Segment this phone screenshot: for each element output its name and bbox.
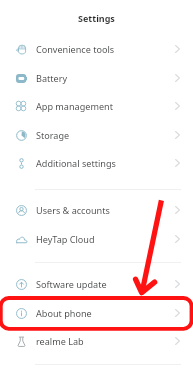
- staticText: Battery: [36, 72, 68, 84]
- staticText: Additional settings: [36, 157, 116, 169]
- button[interactable]: Additional settings: [0, 149, 193, 177]
- button[interactable]: HeyTap Cloud: [0, 225, 193, 253]
- button[interactable]: Battery: [0, 64, 193, 92]
- staticText: About phone: [36, 307, 92, 319]
- staticText: Settings: [78, 12, 115, 24]
- button[interactable]: App management: [0, 92, 193, 120]
- staticText: Software update: [36, 278, 107, 290]
- staticText: Storage: [36, 129, 70, 141]
- staticText: Users & accounts: [36, 204, 110, 216]
- button[interactable]: About phone: [0, 299, 193, 327]
- button[interactable]: Users & accounts: [0, 196, 193, 224]
- staticText: App management: [36, 100, 113, 112]
- button[interactable]: Software update: [0, 270, 193, 298]
- staticText: realme Lab: [36, 335, 84, 347]
- staticText: Convenience tools: [36, 43, 115, 55]
- button[interactable]: Storage: [0, 121, 193, 149]
- button[interactable]: realme Lab: [0, 327, 193, 355]
- staticText: HeyTap Cloud: [36, 233, 95, 245]
- button[interactable]: Convenience tools: [0, 35, 193, 63]
